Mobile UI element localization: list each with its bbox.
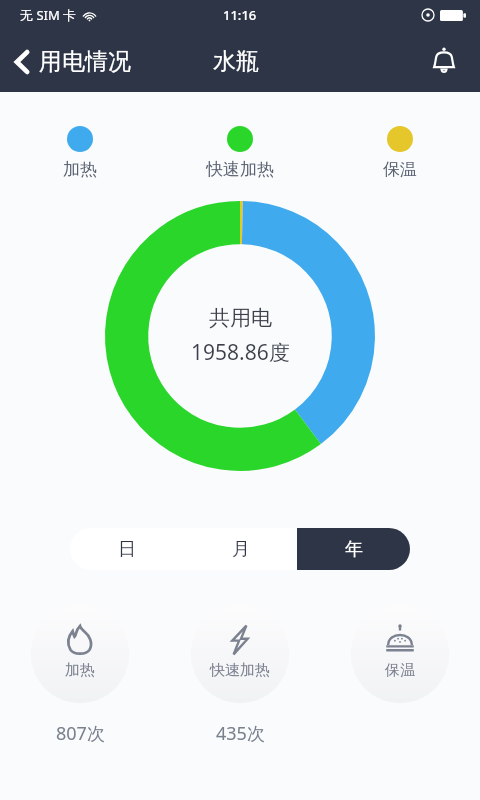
staticText: 月 bbox=[232, 538, 250, 561]
staticText: 快速加热 bbox=[206, 159, 274, 180]
staticText: 保温 bbox=[383, 159, 417, 180]
staticText: 1958.86度 bbox=[191, 338, 290, 367]
button[interactable]: 保温 bbox=[351, 605, 449, 703]
button[interactable]: 日 bbox=[70, 528, 184, 570]
button[interactable]: 快速加热 bbox=[191, 605, 289, 703]
staticText: 快速加热 bbox=[210, 661, 270, 680]
staticText: 共用电 bbox=[209, 305, 272, 331]
staticText: 保温 bbox=[385, 661, 415, 680]
staticText: 年 bbox=[345, 538, 363, 561]
button[interactable]: 加热 bbox=[31, 605, 129, 703]
button[interactable]: 月 bbox=[184, 528, 297, 570]
button[interactable]: 年 bbox=[297, 528, 410, 570]
staticText: 日 bbox=[118, 538, 136, 561]
button[interactable]: 加热 bbox=[0, 126, 160, 180]
staticText: 用电情况 bbox=[39, 47, 131, 76]
staticText: 807次 bbox=[56, 721, 105, 746]
button[interactable]: 快速加热 bbox=[160, 126, 320, 180]
staticText: 435次 bbox=[216, 721, 265, 746]
staticText: 水瓶 bbox=[213, 47, 259, 76]
staticText: 加热 bbox=[63, 159, 97, 180]
staticText: 11:16 bbox=[223, 6, 257, 24]
button[interactable]: 保温 bbox=[320, 126, 480, 180]
staticText: 无 SIM 卡 bbox=[20, 6, 77, 24]
staticText: 加热 bbox=[65, 661, 95, 680]
button[interactable]: 用电情况 bbox=[0, 39, 141, 84]
button[interactable]: Notifications bbox=[422, 39, 466, 83]
